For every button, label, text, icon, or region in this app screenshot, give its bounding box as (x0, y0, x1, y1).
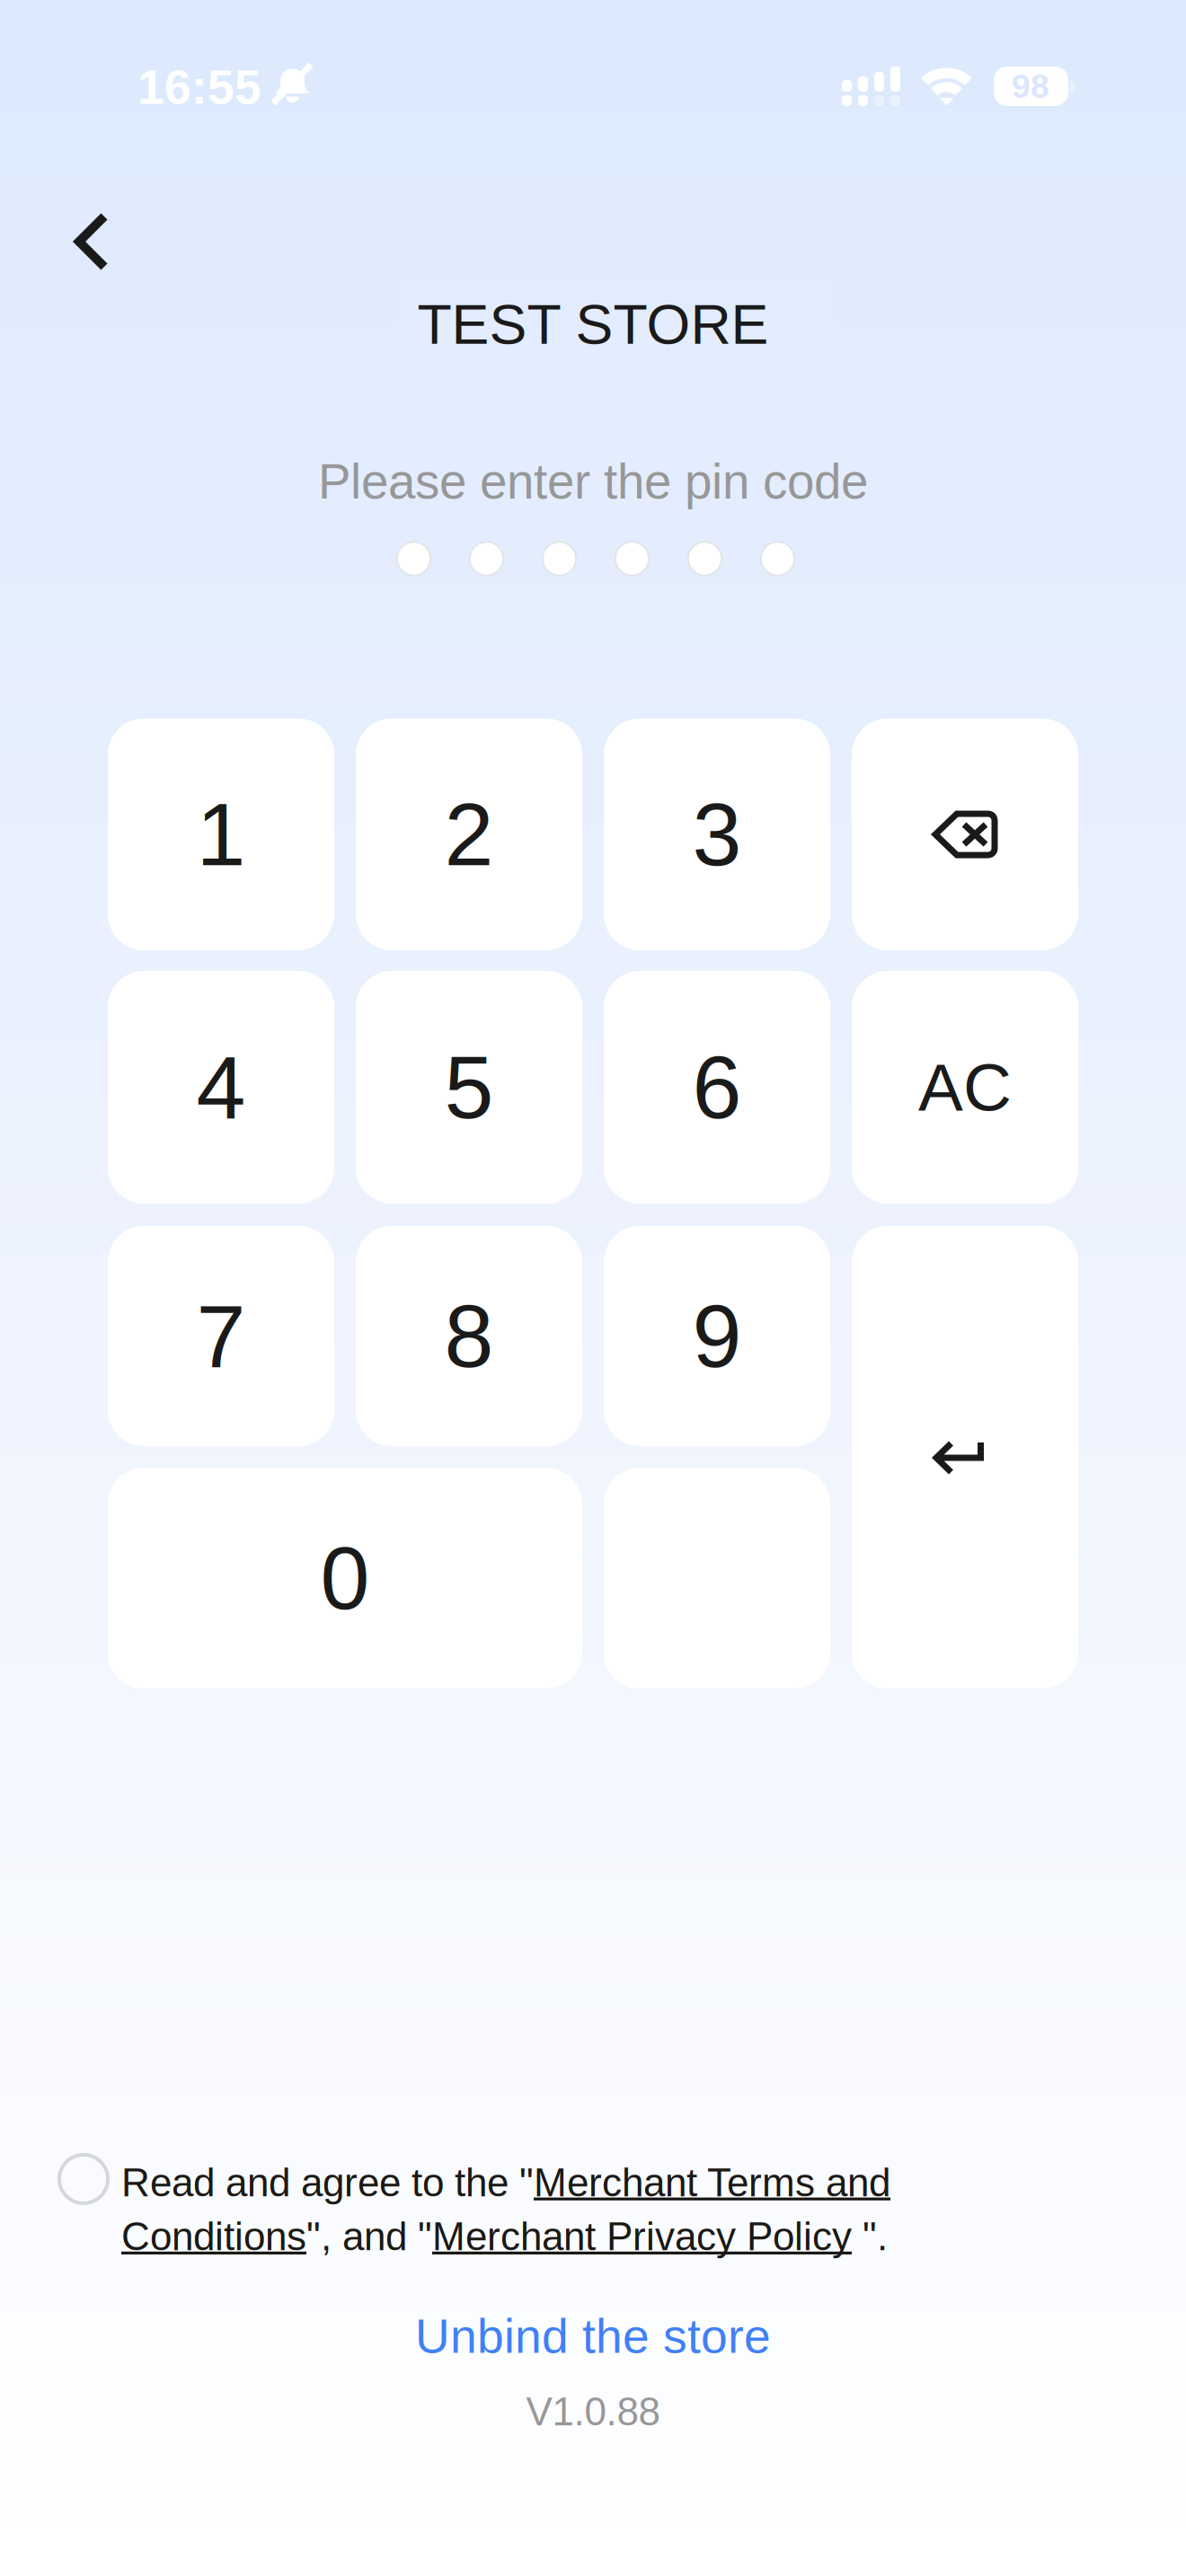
staticText: Unbind the store (415, 2309, 771, 2363)
staticText: 98 (1012, 67, 1049, 105)
button[interactable]: Back (36, 186, 147, 297)
button[interactable]: 9 (604, 1226, 830, 1446)
button[interactable]: 8 (356, 1226, 582, 1446)
staticText: Read and agree to the "Merchant Terms an… (121, 2160, 890, 2259)
button[interactable]: 1 (108, 719, 334, 950)
button[interactable]: Agree to terms (42, 2138, 125, 2220)
staticText: 16:55 (137, 60, 261, 114)
button[interactable]: AC (852, 971, 1078, 1204)
staticText: V1.0.88 (526, 2390, 660, 2434)
staticText: 1 (196, 785, 246, 884)
button[interactable]: 3 (604, 719, 830, 950)
button[interactable]: 6 (604, 971, 830, 1204)
button[interactable] (852, 1226, 1078, 1689)
staticText: TEST STORE (417, 293, 769, 356)
staticText: 5 (444, 1038, 494, 1137)
staticText: 8 (444, 1287, 494, 1386)
button[interactable]: 0 (108, 1468, 582, 1689)
button[interactable]: 7 (108, 1226, 334, 1446)
staticText: 0 (320, 1529, 370, 1628)
staticText: 9 (692, 1287, 742, 1386)
button[interactable]: Unbind the store (359, 2305, 827, 2368)
staticText: Please enter the pin code (318, 454, 868, 509)
staticText: 6 (692, 1038, 742, 1137)
staticText: AC (918, 1050, 1012, 1125)
button[interactable]: 4 (108, 971, 334, 1204)
staticText: 7 (196, 1287, 246, 1386)
staticText: 3 (692, 785, 742, 884)
button[interactable]: 2 (356, 719, 582, 950)
staticText: 4 (196, 1038, 246, 1137)
button[interactable]: 5 (356, 971, 582, 1204)
staticText: 2 (444, 785, 494, 884)
button[interactable] (852, 719, 1078, 950)
